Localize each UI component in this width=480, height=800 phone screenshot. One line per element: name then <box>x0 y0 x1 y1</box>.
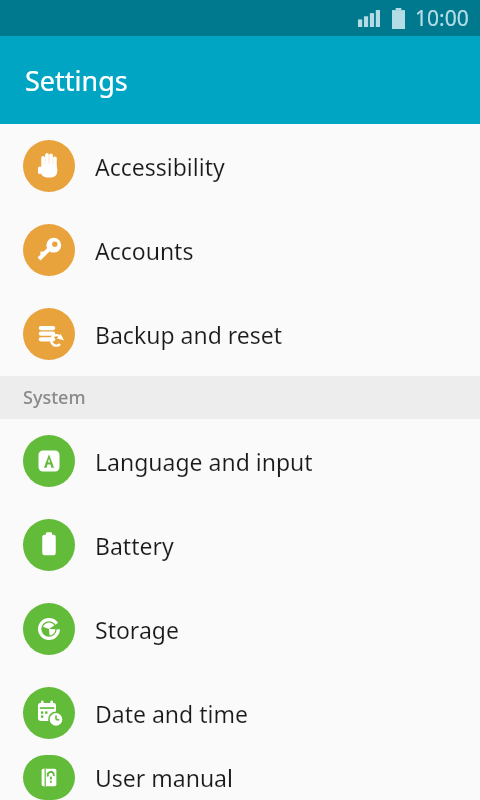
staticText: Storage <box>95 614 179 645</box>
button[interactable]: User manual <box>0 755 480 800</box>
staticText: Backup and reset <box>95 319 283 350</box>
button[interactable]: Language and input <box>0 419 480 503</box>
button[interactable]: Backup and reset <box>0 292 480 376</box>
button[interactable]: Battery <box>0 503 480 587</box>
staticText: Accounts <box>95 235 194 266</box>
staticText: Battery <box>95 530 174 561</box>
staticText: Settings <box>25 62 128 99</box>
button[interactable]: Accounts <box>0 208 480 292</box>
staticText: System <box>23 385 86 410</box>
staticText: User manual <box>95 762 233 793</box>
button[interactable]: Accessibility <box>0 124 480 208</box>
staticText: Language and input <box>95 446 313 477</box>
button[interactable]: Storage <box>0 587 480 671</box>
button[interactable]: Date and time <box>0 671 480 755</box>
staticText: 10:00 <box>415 4 469 33</box>
staticText: Accessibility <box>95 151 225 182</box>
staticText: Date and time <box>95 698 248 729</box>
